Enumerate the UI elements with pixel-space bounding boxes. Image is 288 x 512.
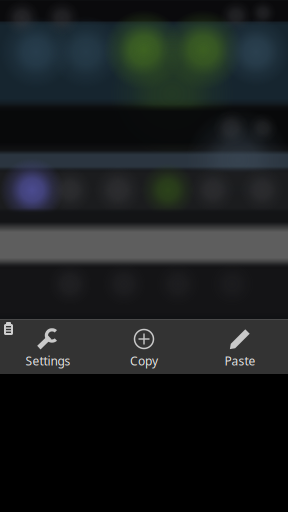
staticText: Settings — [25, 353, 70, 369]
staticText: Paste — [224, 353, 255, 369]
staticText: Copy — [130, 353, 158, 369]
button[interactable]: Settings — [0, 319, 96, 374]
button[interactable]: Paste — [192, 319, 288, 374]
button[interactable]: Copy — [96, 319, 192, 374]
button[interactable]: Clipboard — [0, 319, 17, 339]
